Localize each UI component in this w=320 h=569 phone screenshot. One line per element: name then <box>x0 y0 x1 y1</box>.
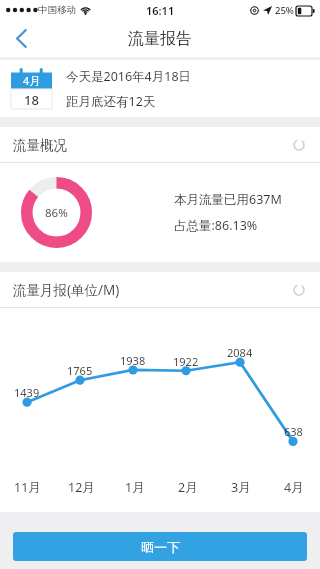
staticText: 2084 <box>227 345 253 360</box>
staticText: 11月 <box>14 479 41 496</box>
staticText: 2月 <box>178 479 198 496</box>
staticText: 18 <box>24 91 39 109</box>
staticText: 距月底还有12天 <box>66 93 156 110</box>
staticText: 16:11 <box>146 3 175 18</box>
button[interactable]: Refresh <box>288 279 310 301</box>
staticText: 今天是2016年4月18日 <box>66 68 192 85</box>
staticText: 1439 <box>14 385 40 400</box>
staticText: 12月 <box>68 479 95 496</box>
button[interactable]: 4月 <box>0 60 320 117</box>
staticText: 1月 <box>125 479 145 496</box>
staticText: 4月 <box>284 479 304 496</box>
staticText: 1938 <box>120 353 146 368</box>
staticText: 晒一下 <box>141 539 180 555</box>
button[interactable]: Back <box>0 20 42 57</box>
staticText: 25% <box>275 4 294 17</box>
staticText: 638 <box>284 424 303 439</box>
staticText: 流量概况 <box>13 137 67 154</box>
staticText: 本月流量已用637M <box>174 191 282 208</box>
staticText: 4月 <box>23 73 41 88</box>
staticText: 流量月报(单位/M) <box>13 281 120 299</box>
button[interactable]: 晒一下 <box>13 532 307 561</box>
button[interactable]: Refresh <box>288 134 310 156</box>
staticText: 86% <box>45 205 68 221</box>
staticText: 中国移动 <box>38 4 76 16</box>
staticText: 3月 <box>231 479 251 496</box>
staticText: 占总量:86.13% <box>174 217 258 234</box>
staticText: 流量报告 <box>128 29 192 49</box>
staticText: 1922 <box>173 354 199 369</box>
staticText: 1765 <box>67 363 93 378</box>
